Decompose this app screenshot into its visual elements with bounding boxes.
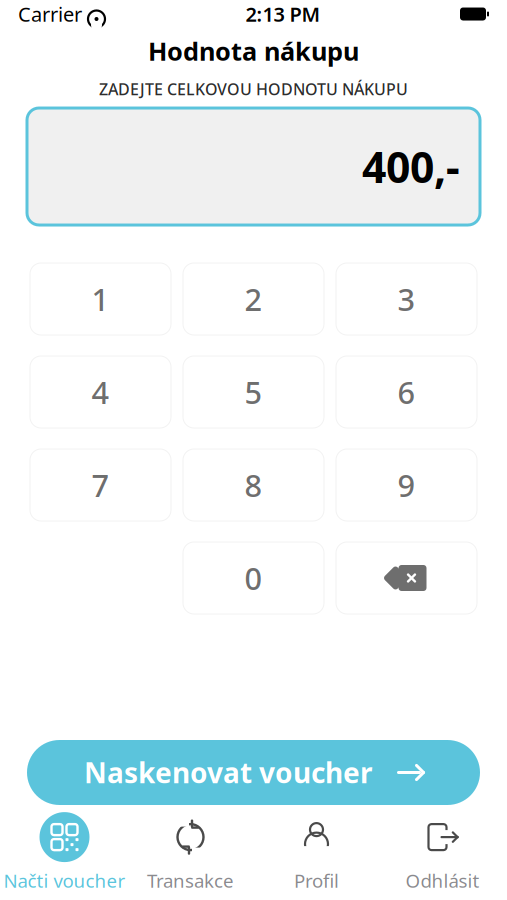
staticText: 5: [244, 372, 262, 412]
button[interactable]: Odhlásit: [379, 809, 505, 895]
staticText: Transakce: [147, 868, 234, 893]
staticText: 2: [244, 279, 262, 319]
staticText: Carrier: [18, 1, 82, 27]
staticText: Naskenovat voucher: [84, 754, 373, 791]
staticText: Odhlásit: [405, 868, 479, 893]
button[interactable]: 2: [183, 263, 324, 335]
staticText: 8: [244, 465, 262, 505]
button[interactable]: 8: [183, 449, 324, 521]
button[interactable]: 6: [336, 356, 477, 428]
staticText: ZADEJTE CELKOVOU HODNOTU NÁKUPU: [99, 78, 408, 100]
button[interactable]: Načti voucher: [1, 809, 127, 895]
staticText: 0: [244, 558, 262, 598]
button[interactable]: Delete: [336, 542, 477, 614]
button[interactable]: Profil: [253, 809, 379, 895]
button[interactable]: 4: [30, 356, 171, 428]
button[interactable]: Naskenovat voucher: [27, 740, 480, 805]
button[interactable]: 5: [183, 356, 324, 428]
button[interactable]: 0: [183, 542, 324, 614]
button[interactable]: 9: [336, 449, 477, 521]
staticText: Hodnota nákupu: [148, 34, 359, 68]
staticText: 9: [397, 465, 415, 505]
staticText: 3: [397, 279, 415, 319]
button[interactable]: 1: [30, 263, 171, 335]
staticText: 2:13 PM: [245, 1, 320, 27]
staticText: Načti voucher: [3, 868, 125, 893]
staticText: 4: [91, 372, 109, 412]
button[interactable]: Transakce: [127, 809, 253, 895]
staticText: 400,-: [362, 138, 460, 195]
button[interactable]: 7: [30, 449, 171, 521]
staticText: Profil: [294, 868, 339, 893]
staticText: 7: [91, 465, 109, 505]
staticText: 1: [91, 279, 109, 319]
staticText: 6: [397, 372, 415, 412]
button[interactable]: 3: [336, 263, 477, 335]
